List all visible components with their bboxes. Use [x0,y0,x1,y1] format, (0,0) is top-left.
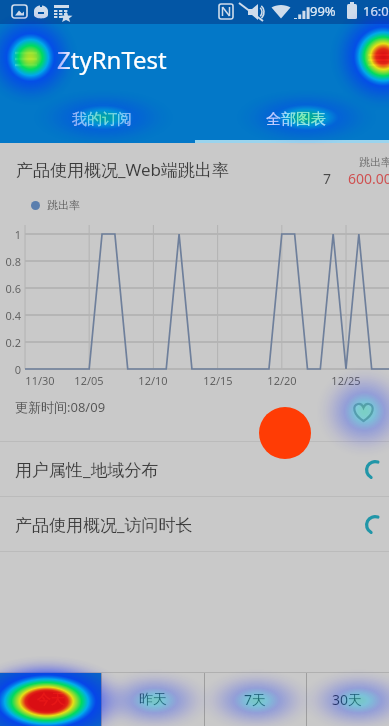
staticText: 7天 [244,690,267,709]
staticText: 我的订阅 [72,110,132,129]
staticText: 跳出率 [359,155,389,169]
staticText: 更新时间:08/09 [15,398,106,416]
staticText: 11/30 [25,373,55,388]
staticText: 7 [323,169,332,188]
button[interactable]: 昨天 [101,673,204,726]
staticText: 0 [14,362,21,377]
staticText: 99% [310,2,336,20]
staticText: 用户属性_地域分布 [15,458,159,481]
button[interactable]: 全部图表 [203,95,389,143]
staticText: 跳出率 [47,198,80,212]
staticText: 今天 [37,691,65,709]
button[interactable]: 30天 [306,673,389,726]
staticText: 12/20 [267,373,297,388]
staticText: 产品使用概况_Web端跳出率 [16,158,230,181]
staticText: 产品使用概况_访问时长 [15,513,193,536]
staticText: 0.8 [5,254,21,269]
staticText: 30天 [332,690,363,709]
button[interactable]: 产品使用概况_访问时长 [0,497,389,552]
staticText: 昨天 [139,691,167,709]
staticText: 16:0 [363,2,389,20]
staticText: 全部图表 [266,110,326,129]
staticText: 600.00% [348,169,389,188]
staticText: 12/25 [331,373,361,388]
button[interactable]: Menu [15,52,37,68]
staticText: 0.6 [5,281,21,296]
button[interactable]: More options [368,49,389,71]
staticText: 0.4 [5,308,21,323]
staticText: 12/05 [74,373,104,388]
button[interactable]: 用户属性_地域分布 [0,442,389,497]
button[interactable]: 我的订阅 [0,95,203,143]
staticText: 0.2 [5,335,21,350]
button[interactable]: Favourite [352,402,375,422]
staticText: 12/15 [203,373,233,388]
staticText: ZtyRnTest [57,43,167,76]
staticText: 1 [14,227,21,242]
staticText: 12/10 [138,373,168,388]
button[interactable]: 今天 [0,673,101,726]
button[interactable]: 7天 [204,673,306,726]
